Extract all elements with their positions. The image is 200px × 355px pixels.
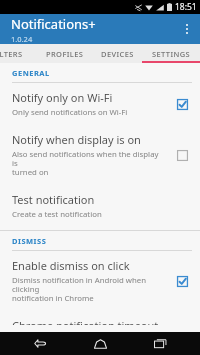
staticText: FILTERS (0, 49, 23, 59)
staticText: Dismiss notification in Android when cli… (12, 275, 166, 304)
staticText: Only send notifications on Wi-Fi (12, 107, 128, 118)
button[interactable]: More options (174, 14, 200, 44)
button[interactable]: Notify only on Wi-Fi (0, 83, 200, 125)
staticText: DISMISS (12, 236, 47, 246)
button[interactable]: Test notification (0, 185, 200, 227)
button[interactable]: DEVICES (92, 44, 142, 63)
staticText: Notify when display is on (12, 132, 141, 147)
button[interactable] (172, 145, 192, 165)
button[interactable]: Enable dismiss on click (0, 251, 200, 311)
button[interactable]: Notify when display is on (0, 125, 200, 185)
staticText: 1.0.24 (11, 34, 33, 44)
staticText: Also send notifications when the display… (12, 149, 166, 178)
button[interactable]: PROFILES (38, 44, 92, 63)
button[interactable]: Chrome notification timeout (0, 311, 200, 332)
button[interactable]: Home (80, 332, 120, 355)
button[interactable] (172, 271, 192, 291)
staticText: Notifications+ (11, 15, 96, 33)
staticText: SETTINGS (152, 49, 191, 59)
button[interactable]: FILTERS (0, 44, 38, 63)
button[interactable]: SETTINGS (142, 44, 200, 63)
button[interactable]: Back (20, 332, 60, 355)
staticText: DEVICES (101, 49, 134, 59)
button[interactable]: Recent apps (140, 332, 180, 355)
staticText: Notify only on Wi-Fi (12, 90, 113, 105)
staticText: 18:51 (175, 1, 197, 13)
staticText: Create a test notification (12, 209, 102, 220)
staticText: Chrome notification timeout (12, 318, 159, 325)
staticText: Test notification (12, 192, 95, 207)
staticText: GENERAL (12, 68, 50, 78)
button[interactable] (172, 94, 192, 114)
staticText: PROFILES (46, 49, 84, 59)
staticText: Enable dismiss on click (12, 258, 130, 273)
